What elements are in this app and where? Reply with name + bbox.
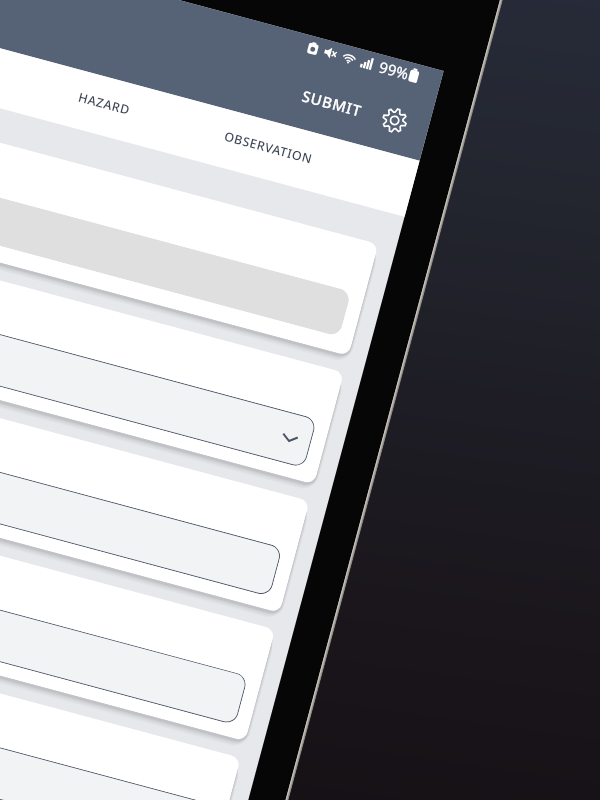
button[interactable]	[0, 517, 275, 741]
staticText: SUBMIT	[300, 86, 364, 121]
staticText: HAZARD	[76, 89, 132, 119]
button[interactable]	[0, 774, 206, 800]
button[interactable]	[0, 260, 344, 484]
button[interactable]	[0, 132, 379, 356]
button[interactable]: SUBMIT	[288, 73, 376, 133]
staticText: 99%	[377, 56, 411, 84]
button[interactable]	[0, 389, 310, 613]
button[interactable]: OBSERVATION	[204, 104, 331, 190]
button[interactable]: Settings	[365, 90, 424, 149]
button[interactable]: HAZARD	[40, 60, 167, 146]
staticText: OBSERVATION	[222, 128, 314, 168]
button[interactable]	[0, 645, 241, 800]
